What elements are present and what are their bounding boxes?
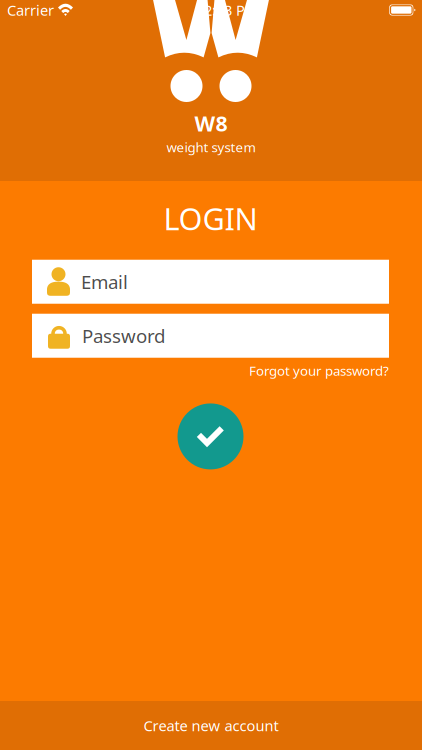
staticText: Email [81, 269, 128, 294]
staticText: Create new account [143, 716, 278, 735]
staticText: LOGIN [163, 198, 257, 239]
button[interactable]: Forgot your password? [249, 362, 389, 379]
staticText: Forgot your password? [249, 362, 389, 379]
button[interactable]: Email [32, 260, 389, 304]
staticText: W8 [194, 109, 227, 137]
staticText: weight system [166, 138, 255, 156]
button[interactable]: Create new account [0, 701, 422, 750]
staticText: Carrier [7, 0, 54, 20]
staticText: Password [82, 323, 165, 348]
button[interactable]: Sign in [177, 403, 243, 469]
staticText: 2:13 PM [204, 0, 258, 20]
button[interactable]: Password [32, 314, 389, 358]
